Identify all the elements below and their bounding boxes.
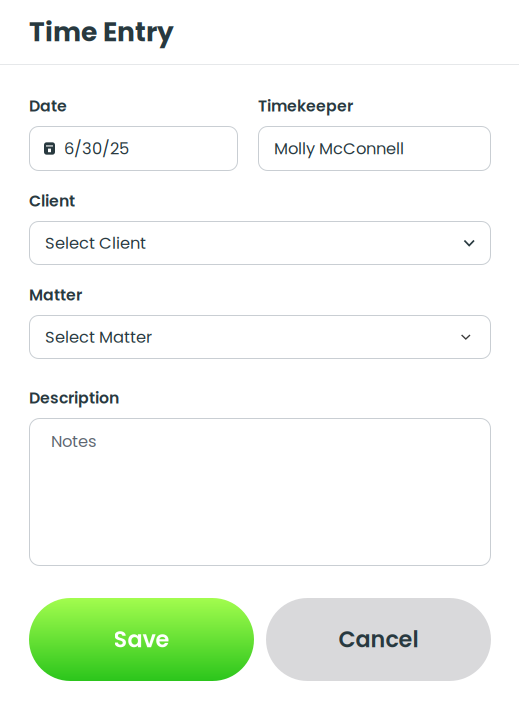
button[interactable]: Cancel: [266, 598, 491, 681]
staticText: Description: [29, 387, 119, 409]
staticText: Notes: [51, 430, 97, 453]
staticText: Time Entry: [29, 13, 174, 50]
staticText: Cancel: [338, 624, 418, 655]
staticText: Select Matter: [45, 326, 152, 348]
staticText: 6/30/25: [64, 137, 129, 160]
button[interactable]: Select Client: [29, 221, 491, 265]
staticText: Save: [113, 624, 169, 655]
button[interactable]: Select Matter: [29, 315, 491, 359]
staticText: Date: [29, 95, 67, 117]
staticText: Matter: [29, 284, 82, 306]
staticText: Select Client: [45, 232, 146, 254]
staticText: Timekeeper: [258, 95, 353, 117]
button[interactable]: Save: [29, 598, 254, 681]
staticText: Molly McConnell: [274, 137, 404, 160]
button[interactable]: 6/30/25: [29, 126, 238, 171]
staticText: Client: [29, 190, 75, 212]
